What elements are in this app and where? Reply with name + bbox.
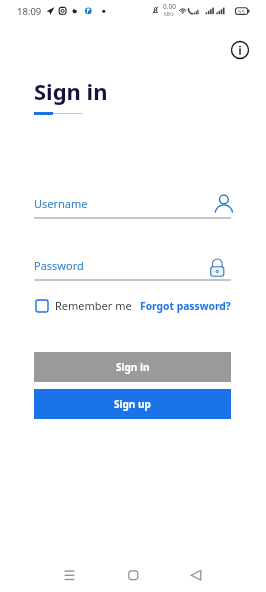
staticText: Username bbox=[34, 196, 88, 211]
staticText: 0.00 bbox=[163, 2, 176, 11]
button[interactable]: Recent apps bbox=[57, 563, 82, 588]
staticText: Sign in bbox=[34, 76, 108, 106]
staticText: KB/s bbox=[164, 11, 174, 17]
button[interactable]: Remember me bbox=[35, 298, 132, 313]
button[interactable]: Forgot password? bbox=[140, 299, 231, 313]
staticText: Password bbox=[34, 258, 84, 273]
button[interactable]: Info bbox=[229, 39, 251, 61]
button[interactable]: Home bbox=[121, 563, 146, 588]
button[interactable]: Sign up bbox=[34, 389, 231, 419]
button[interactable]: Sign in bbox=[34, 352, 231, 382]
button[interactable]: Back bbox=[183, 563, 208, 588]
staticText: Forgot password? bbox=[140, 299, 231, 313]
staticText: Sign in bbox=[116, 360, 150, 374]
staticText: Remember me bbox=[55, 298, 132, 313]
staticText: 18:09 bbox=[17, 5, 42, 18]
staticText: Sign up bbox=[114, 397, 151, 411]
staticText: 55 bbox=[238, 8, 245, 16]
